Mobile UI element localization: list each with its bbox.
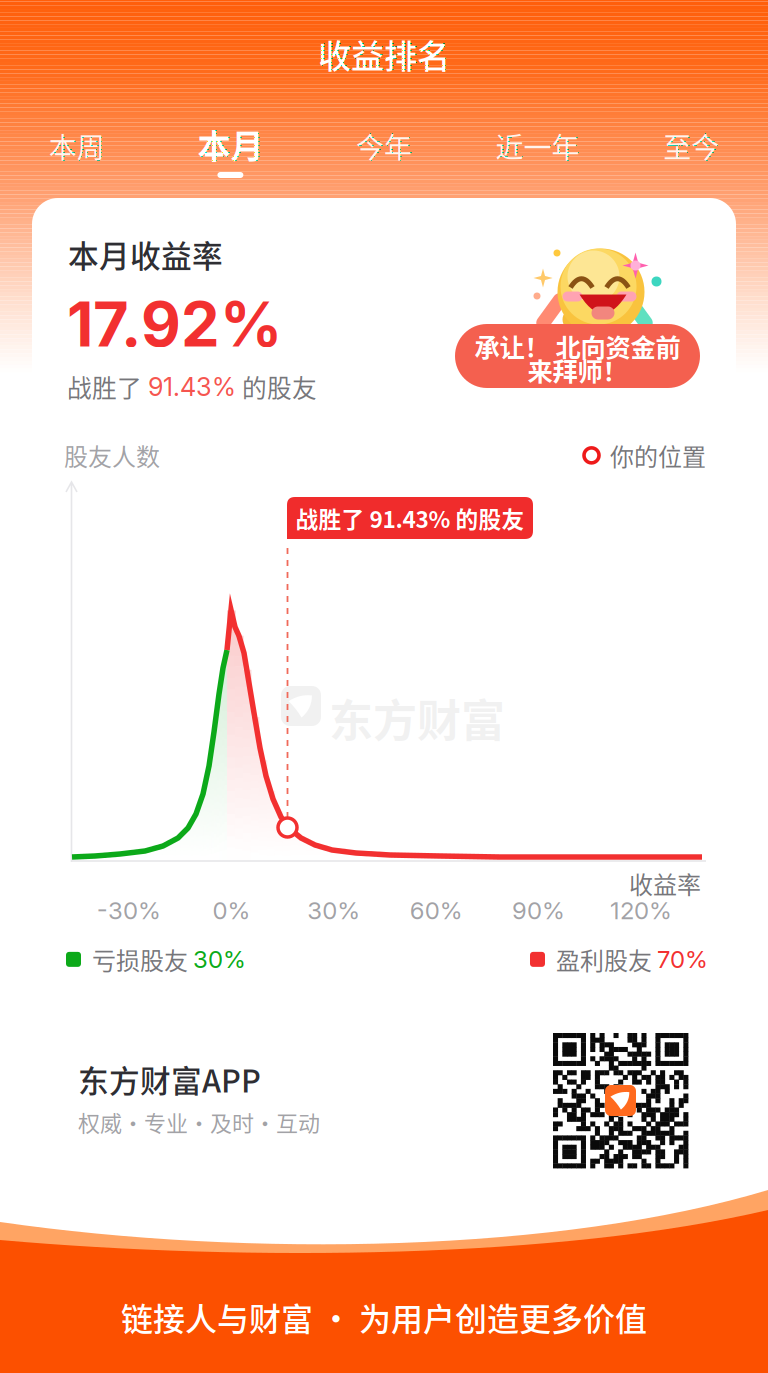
staticText: 30% [193,945,246,974]
staticText: 东方财富APP [78,1057,261,1101]
staticText: 17.92% [67,287,282,361]
staticText: 91.43% [148,371,236,402]
staticText: 60% [410,896,463,925]
staticText: -30% [97,896,161,925]
staticText: 战胜了 [67,369,148,405]
staticText: 70% [657,945,708,974]
staticText: 90% [512,896,565,925]
staticText: 盈利股友 [556,942,657,977]
staticText: 本周 [49,126,105,166]
button[interactable]: 收益排名 [284,32,484,76]
button[interactable]: 今年 [307,126,461,190]
staticText: 权威·专业·及时·互动 [78,1106,320,1138]
staticText: 30% [307,896,360,925]
staticText: 承让！ 北向资金前 [474,328,680,364]
button[interactable]: 本月 [154,126,307,190]
staticText: 链接人与财富 · 为用户创造更多价值 [121,1294,647,1340]
button[interactable]: 至今 [614,126,768,190]
staticText: 收益率 [629,866,701,901]
staticText: 东方财富 [329,686,505,750]
staticText: 本月收益率 [68,232,223,276]
staticText: 亏损股友 [92,942,193,977]
staticText: 至今 [663,126,719,166]
staticText: 股友人数 [64,438,160,473]
staticText: 你的位置 [610,438,706,473]
staticText: 120% [610,896,672,925]
button[interactable]: 本周 [0,126,154,190]
staticText: 本月 [197,120,263,168]
staticText: 近一年 [496,126,580,166]
button[interactable]: 近一年 [461,126,614,190]
staticText: 战胜了 91.43% 的股友 [295,502,524,534]
staticText: 0% [212,896,250,925]
staticText: 来拜师！ [527,352,627,388]
staticText: 收益排名 [318,30,450,78]
staticText: 今年 [356,126,412,166]
staticText: 的股友 [236,369,317,405]
